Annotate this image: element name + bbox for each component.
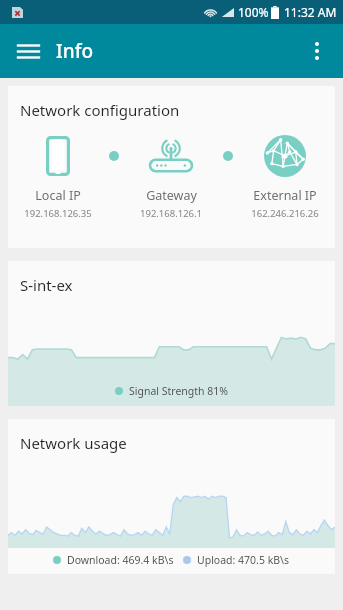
- staticText: 162.246.216.26: [251, 207, 319, 220]
- staticText: Network usage: [20, 433, 127, 453]
- button[interactable]: S-int-ex: [8, 261, 335, 406]
- staticText: 100%: [238, 4, 269, 20]
- staticText: 192.168.126.1: [140, 207, 202, 220]
- button[interactable]: Network configuration: [8, 86, 335, 248]
- button[interactable]: Network usage: [8, 419, 335, 574]
- staticText: Download: 469.4 kB\s: [67, 553, 174, 567]
- staticText: Info: [56, 38, 94, 64]
- staticText: Local IP: [35, 187, 81, 204]
- staticText: Gateway: [146, 187, 197, 204]
- button[interactable]: Open navigation menu: [6, 29, 50, 73]
- staticText: 11:32 AM: [284, 4, 337, 20]
- staticText: External IP: [253, 187, 317, 204]
- staticText: S-int-ex: [20, 275, 73, 295]
- button[interactable]: More options: [295, 29, 339, 73]
- staticText: 192.168.126.35: [24, 207, 92, 220]
- staticText: Upload: 470.5 kB\s: [197, 553, 290, 567]
- staticText: Signal Strength 81%: [129, 384, 229, 398]
- staticText: Network configuration: [20, 100, 180, 120]
